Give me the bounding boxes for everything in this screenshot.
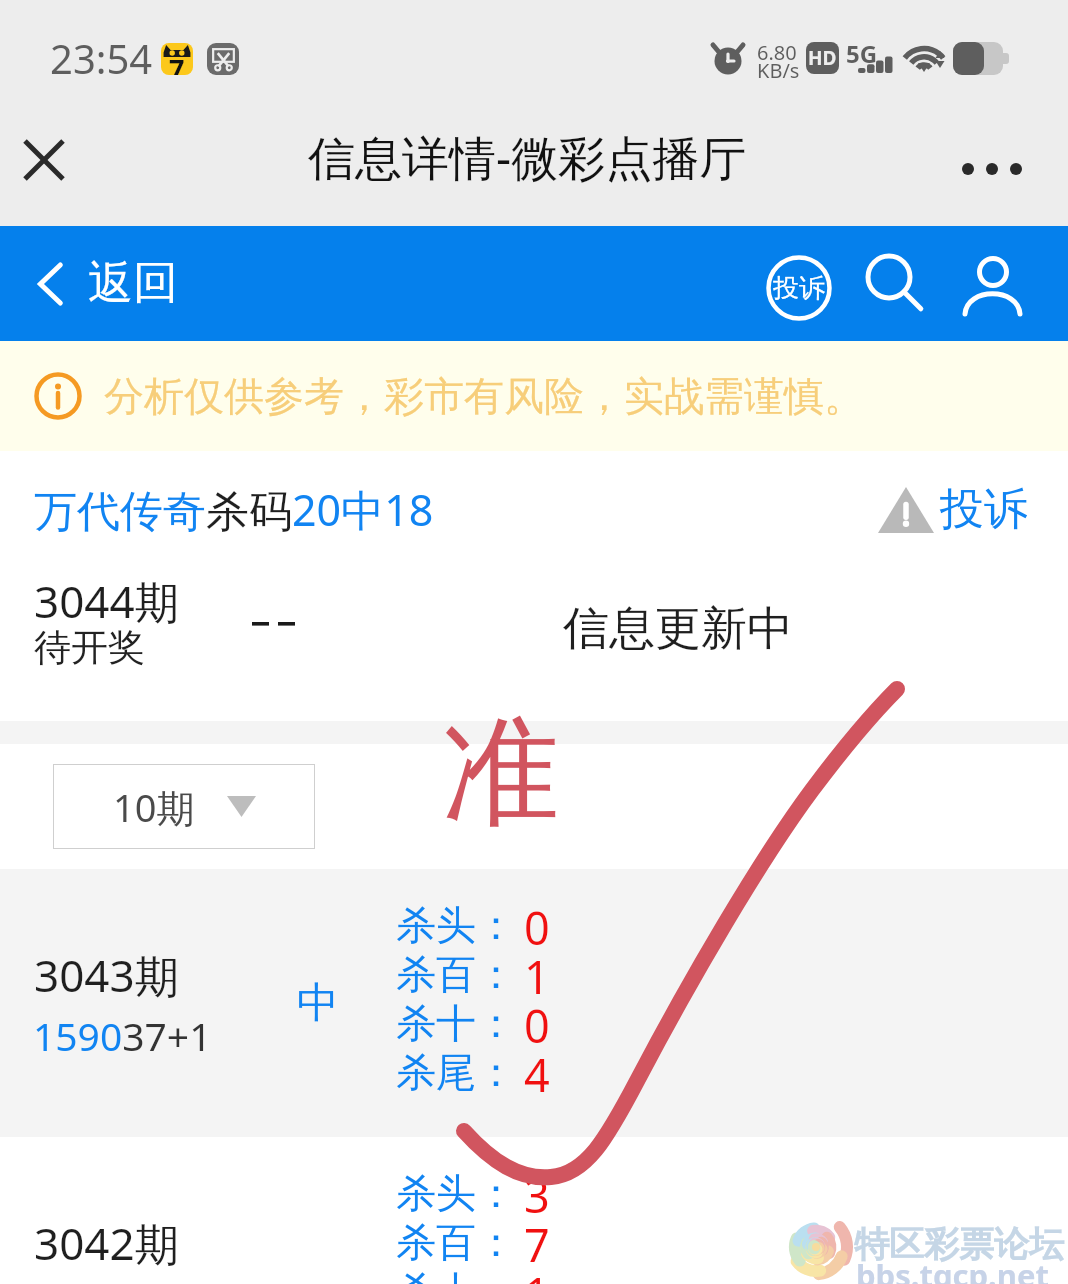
staticText: bbs.tqcp.net (856, 1254, 1049, 1284)
staticText: 杀百： (396, 1217, 516, 1267)
button[interactable]: 返回 (38, 226, 178, 341)
staticText: 1 (524, 946, 550, 1007)
staticText: 4 (524, 1044, 550, 1105)
button[interactable]: 3042期 (0, 1137, 1068, 1284)
staticText: 10期 (113, 781, 195, 833)
button[interactable]: Search (862, 250, 932, 320)
staticText: 信息更新中 (563, 600, 793, 658)
staticText: 投诉 (773, 272, 825, 305)
button[interactable]: 10期 (53, 764, 315, 849)
staticText: 杀十： (396, 998, 516, 1048)
staticText: 杀百： (396, 949, 516, 999)
staticText: 3042期 (34, 1213, 179, 1273)
staticText: 6.80 (757, 39, 797, 66)
staticText: 5G (846, 37, 878, 70)
staticText: 信息详情-微彩点播厅 (308, 125, 747, 189)
staticText: 准 (442, 699, 560, 848)
staticText: 0 (524, 995, 550, 1056)
button[interactable]: More options (952, 134, 1032, 204)
staticText: 投诉 (940, 482, 1028, 537)
staticText: HD (808, 45, 837, 71)
button[interactable]: 3043期 (0, 869, 1068, 1137)
button[interactable]: Close (13, 129, 75, 191)
button[interactable]: 投诉 (878, 482, 1028, 537)
staticText: 杀头： (396, 900, 516, 950)
staticText: 3 (524, 1165, 550, 1226)
staticText: 3044期 (34, 571, 179, 631)
staticText: 3043期 (34, 945, 179, 1005)
staticText: 中 (297, 977, 339, 1030)
button[interactable]: 投诉 Report (761, 250, 837, 326)
staticText: KB/s (757, 57, 800, 84)
staticText: 0 (524, 897, 550, 958)
staticText: 1 (524, 1263, 550, 1284)
staticText: 杀尾： (396, 1047, 516, 1097)
staticText: 万代传奇杀码20中18 (34, 480, 434, 539)
staticText: 23:54 (50, 31, 153, 85)
staticText: 7 (169, 50, 185, 75)
button[interactable]: Profile (960, 252, 1026, 318)
staticText: 杀头： (396, 1168, 516, 1218)
staticText: 分析仅供参考，彩市有风险，实战需谨慎。 (104, 371, 864, 421)
staticText: 待开奖 (34, 624, 145, 671)
staticText: 特区彩票论坛 (854, 1222, 1064, 1266)
staticText: 杀十： (396, 1266, 516, 1284)
staticText: 7 (524, 1214, 550, 1275)
staticText: 159037+1 (33, 1009, 212, 1062)
staticText: 返回 (88, 255, 178, 312)
